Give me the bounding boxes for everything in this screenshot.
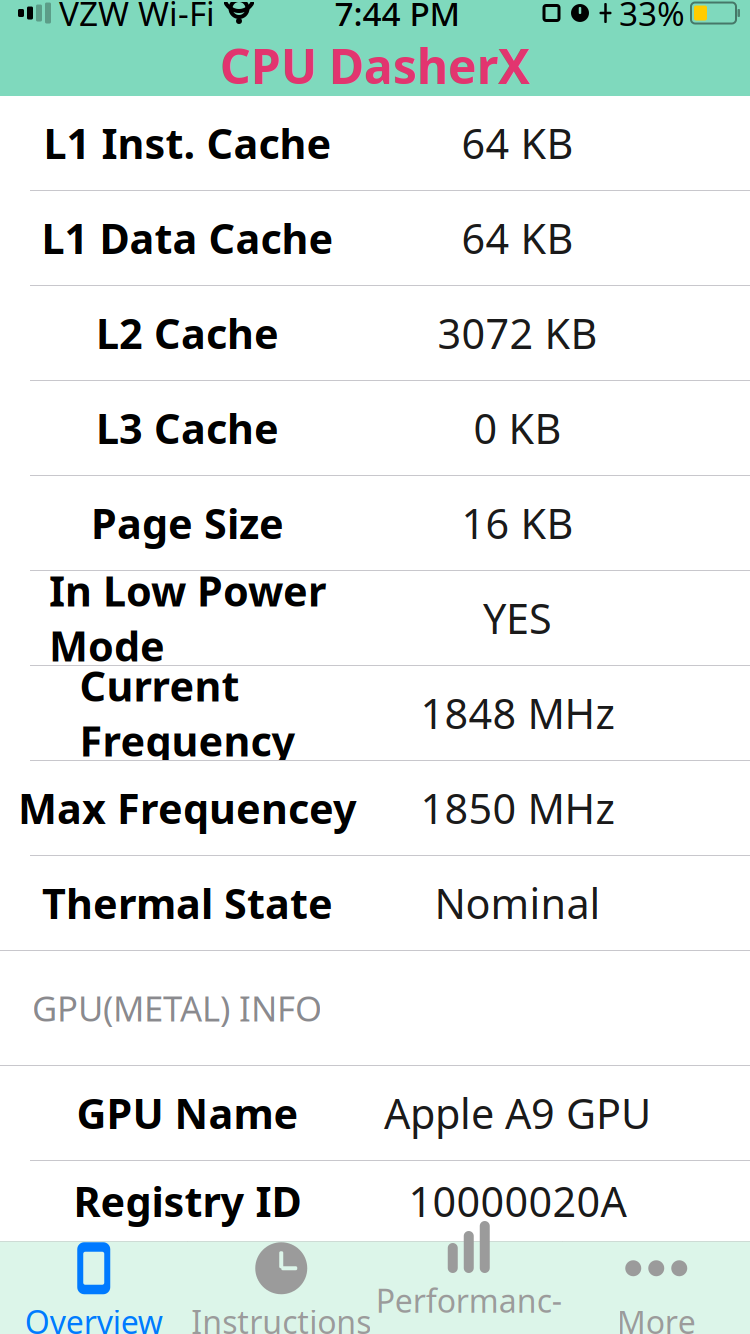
- button[interactable]: L2 Cache: [0, 286, 750, 380]
- staticText: L2 Cache: [96, 306, 279, 360]
- staticText: GPU(METAL) INFO: [32, 985, 322, 1031]
- staticText: 10000020A: [408, 1174, 626, 1228]
- staticText: Nominal: [434, 876, 600, 930]
- staticText: 7:44 PM: [334, 0, 460, 35]
- button[interactable]: L1 Data Cache: [0, 191, 750, 285]
- button[interactable]: GPU Name: [0, 1066, 750, 1160]
- staticText: 1848 MHz: [420, 686, 614, 740]
- staticText: Overview: [25, 1300, 163, 1334]
- button[interactable]: Instructions: [187, 1241, 375, 1334]
- staticText: 64 KB: [461, 116, 573, 170]
- staticText: Instructions: [191, 1300, 371, 1334]
- button[interactable]: Page Size: [0, 476, 750, 570]
- staticText: In Low Power Mode: [49, 563, 326, 673]
- button[interactable]: L1 Inst. Cache: [0, 96, 750, 190]
- staticText: 0 KB: [473, 401, 561, 455]
- staticText: Apple A9 GPU: [384, 1086, 651, 1140]
- staticText: 33%: [619, 0, 685, 35]
- staticText: Thermal State: [42, 876, 333, 930]
- staticText: Current Frequency: [79, 658, 295, 768]
- staticText: 3072 KB: [437, 306, 597, 360]
- staticText: VZW Wi-Fi: [59, 0, 215, 35]
- button[interactable]: In Low Power Mode: [0, 571, 750, 665]
- staticText: L1 Data Cache: [41, 211, 333, 265]
- staticText: L1 Inst. Cache: [43, 116, 331, 170]
- staticText: Registry ID: [73, 1174, 301, 1228]
- button[interactable]: Registry ID: [0, 1161, 750, 1241]
- button[interactable]: Max Frequencey: [0, 761, 750, 855]
- staticText: L3 Cache: [96, 401, 279, 455]
- staticText: 16 KB: [461, 496, 573, 550]
- staticText: GPU Name: [76, 1086, 298, 1140]
- staticText: 1850 MHz: [420, 781, 614, 835]
- button[interactable]: Thermal State: [0, 856, 750, 950]
- staticText: More: [617, 1300, 696, 1334]
- button[interactable]: L3 Cache: [0, 381, 750, 475]
- staticText: YES: [483, 591, 552, 645]
- button[interactable]: Overview: [0, 1241, 187, 1334]
- button[interactable]: Performance: [375, 1241, 562, 1334]
- staticText: 64 KB: [461, 211, 573, 265]
- staticText: CPU DasherX: [220, 34, 530, 97]
- staticText: Page Size: [91, 496, 284, 550]
- button[interactable]: More: [562, 1241, 750, 1334]
- staticText: Performance: [376, 1279, 562, 1334]
- button[interactable]: Current Frequency: [0, 666, 750, 760]
- staticText: Max Frequencey: [18, 781, 357, 835]
